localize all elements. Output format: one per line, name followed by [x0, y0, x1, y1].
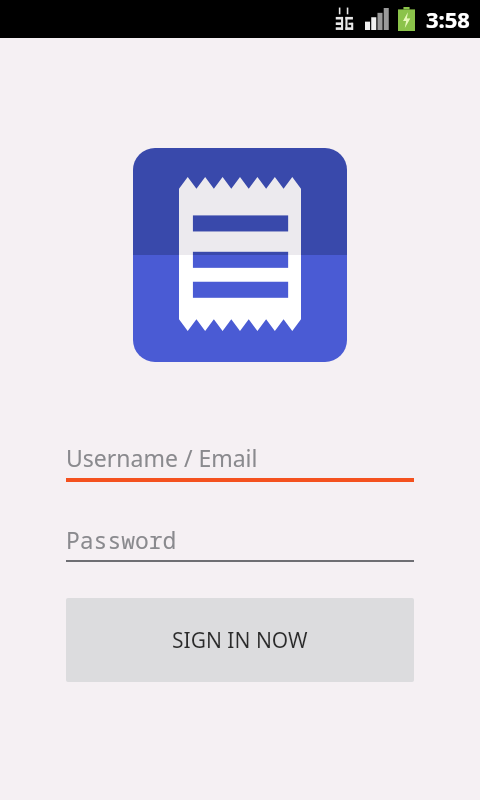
staticText: Username / Email — [66, 442, 258, 473]
staticText: Password — [66, 524, 177, 555]
button[interactable]: Username / Email — [66, 436, 414, 482]
staticText: SIGN IN NOW — [172, 626, 308, 655]
button[interactable]: Password — [66, 518, 414, 562]
button[interactable]: SIGN IN NOW — [66, 598, 414, 682]
staticText: 3:58 — [426, 4, 470, 34]
other: App logo — [133, 148, 347, 362]
